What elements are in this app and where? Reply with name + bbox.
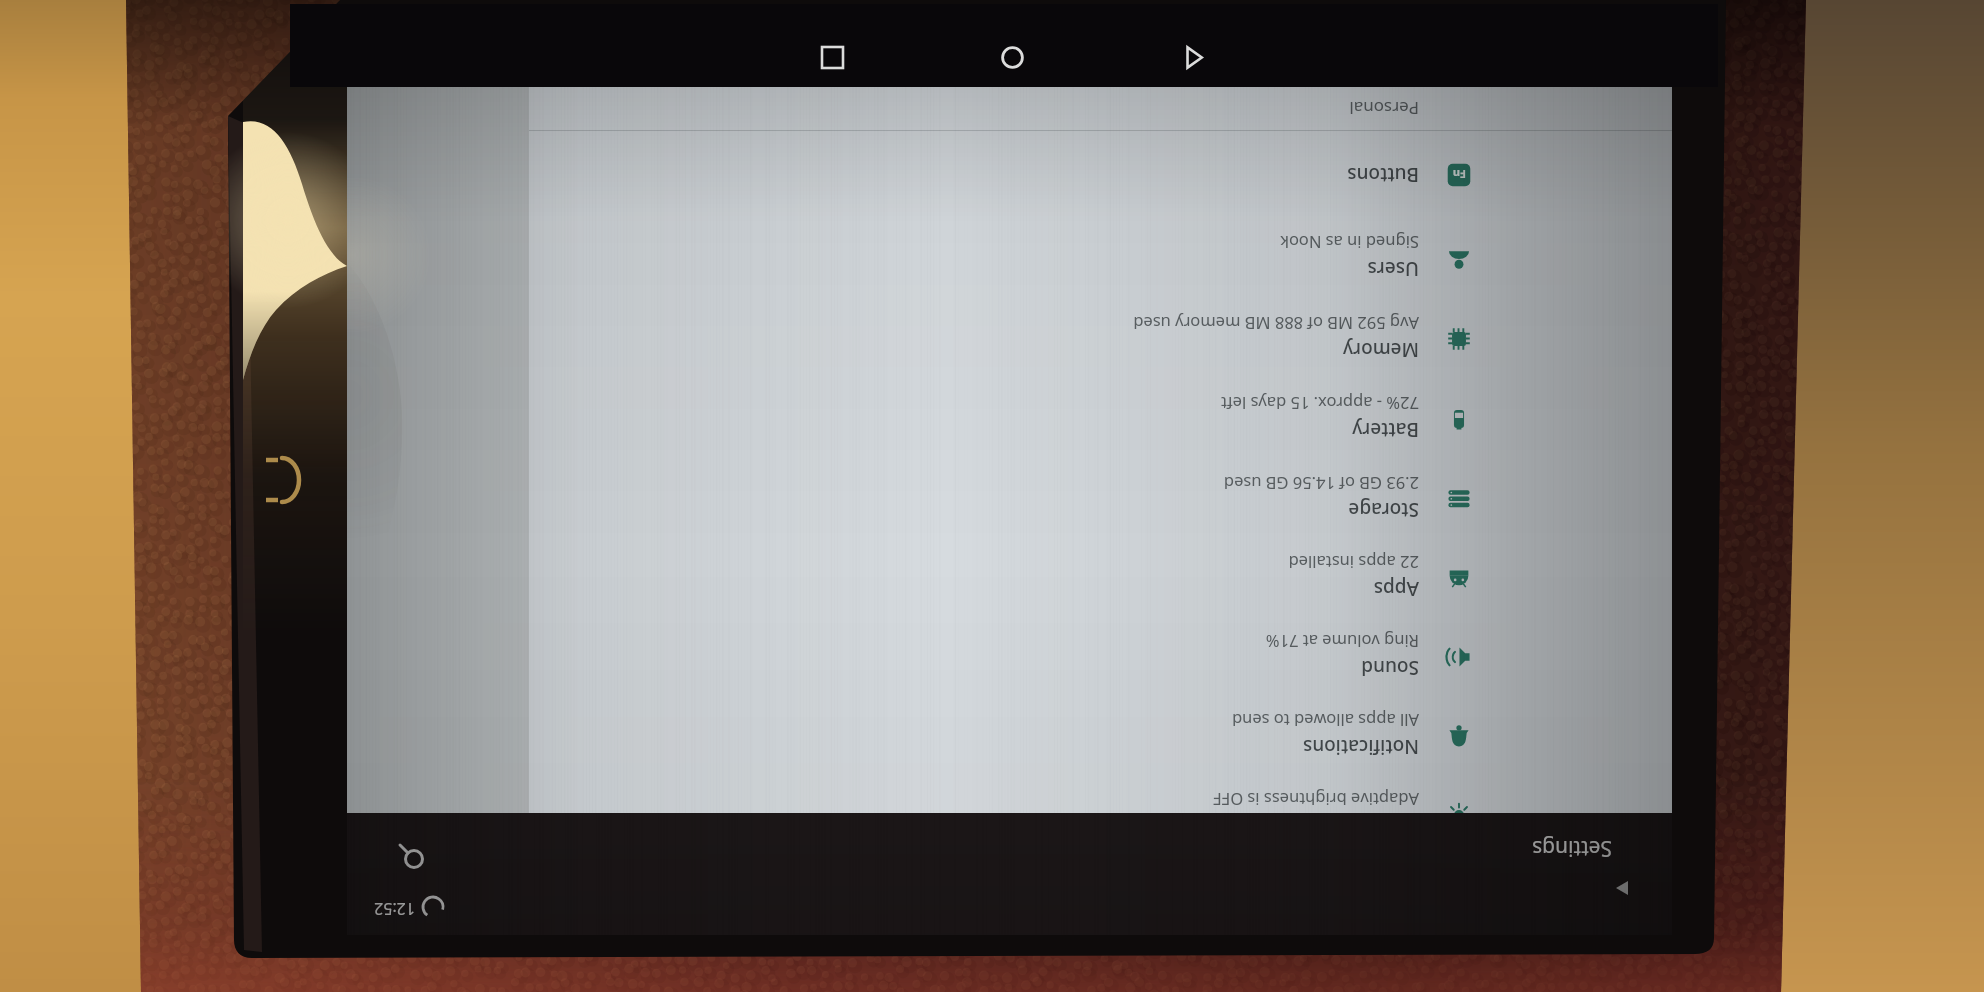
button[interactable]: Personal: [1349, 96, 1419, 120]
staticText: Avg 592 MB of 888 MB memory used: [1133, 313, 1419, 335]
staticText: All apps allowed to send: [1231, 710, 1419, 732]
staticText: 12:52: [374, 898, 415, 920]
button[interactable]: Display: [529, 775, 1672, 813]
staticText: Apps: [1373, 576, 1419, 602]
staticText: Battery: [1352, 417, 1419, 443]
button[interactable]: Navigate up: [1598, 863, 1648, 913]
button[interactable]: Search: [388, 833, 432, 877]
staticText: Ring volume at 71%: [1265, 631, 1419, 653]
staticText: Buttons: [1347, 162, 1419, 188]
button[interactable]: Fn: [529, 135, 1672, 215]
button[interactable]: Memory: [529, 299, 1672, 379]
staticText: Fn: [1452, 167, 1466, 182]
staticText: 22 apps installed: [1288, 552, 1419, 574]
button[interactable]: Users: [529, 218, 1672, 298]
staticText: Storage: [1348, 497, 1419, 523]
button[interactable]: Storage: [529, 459, 1672, 539]
button[interactable]: Sound: [529, 617, 1672, 697]
staticText: 72% - approx. 15 days left: [1221, 393, 1419, 415]
button[interactable]: Apps: [529, 538, 1672, 618]
staticText: Personal: [1349, 97, 1419, 120]
staticText: Memory: [1342, 337, 1419, 363]
button[interactable]: Back: [1182, 46, 1205, 69]
button[interactable]: Notifications: [529, 696, 1672, 776]
button[interactable]: Home: [1001, 46, 1024, 69]
staticText: Sound: [1361, 655, 1419, 681]
button[interactable]: Battery: [529, 379, 1672, 459]
staticText: 2.93 GB of 14.56 GB used: [1223, 473, 1419, 495]
staticText: Settings: [1532, 834, 1612, 863]
staticText: Adaptive brightness is OFF: [1213, 789, 1419, 811]
staticText: Users: [1367, 256, 1419, 282]
staticText: Notifications: [1302, 734, 1419, 760]
button[interactable]: Recents: [822, 47, 843, 68]
staticText: Signed in as Nook: [1280, 232, 1419, 254]
button[interactable]: Settings: [1342, 820, 1642, 880]
